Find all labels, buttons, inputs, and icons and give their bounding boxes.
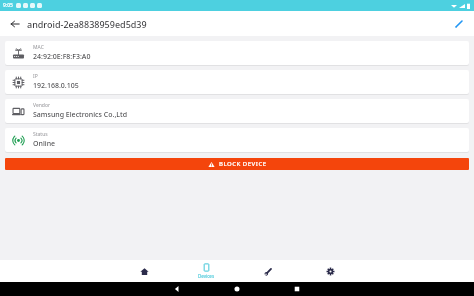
- button[interactable]: Tools: [251, 260, 285, 282]
- staticText: Devices: [198, 273, 215, 279]
- button[interactable]: Edit name: [449, 14, 469, 34]
- staticText: Status: [33, 131, 48, 138]
- staticText: IP: [33, 73, 38, 80]
- staticText: android-2ea8838959ed5d39: [27, 18, 147, 30]
- staticText: 24:92:0E:F8:F3:A0: [33, 52, 91, 62]
- staticText: Samsung Electronics Co.,Ltd: [33, 110, 128, 120]
- button[interactable]: Home: [222, 282, 252, 296]
- button[interactable]: Status: [5, 128, 469, 152]
- button[interactable]: Recent apps: [282, 282, 312, 296]
- button[interactable]: IP: [5, 70, 469, 94]
- button[interactable]: Vendor: [5, 99, 469, 123]
- staticText: Vendor: [33, 102, 50, 109]
- button[interactable]: Back: [5, 14, 25, 34]
- button[interactable]: Devices: [189, 260, 223, 282]
- staticText: 9:05: [3, 2, 13, 9]
- staticText: 192.168.0.105: [33, 81, 79, 91]
- button[interactable]: Settings: [313, 260, 347, 282]
- staticText: BLOCK DEVICE: [219, 160, 267, 168]
- staticText: Online: [33, 139, 56, 149]
- button[interactable]: MAC: [5, 41, 469, 65]
- staticText: MAC: [33, 44, 44, 51]
- button[interactable]: Home: [127, 260, 161, 282]
- button[interactable]: BLOCK DEVICE: [5, 158, 469, 170]
- button[interactable]: Back: [162, 282, 192, 296]
